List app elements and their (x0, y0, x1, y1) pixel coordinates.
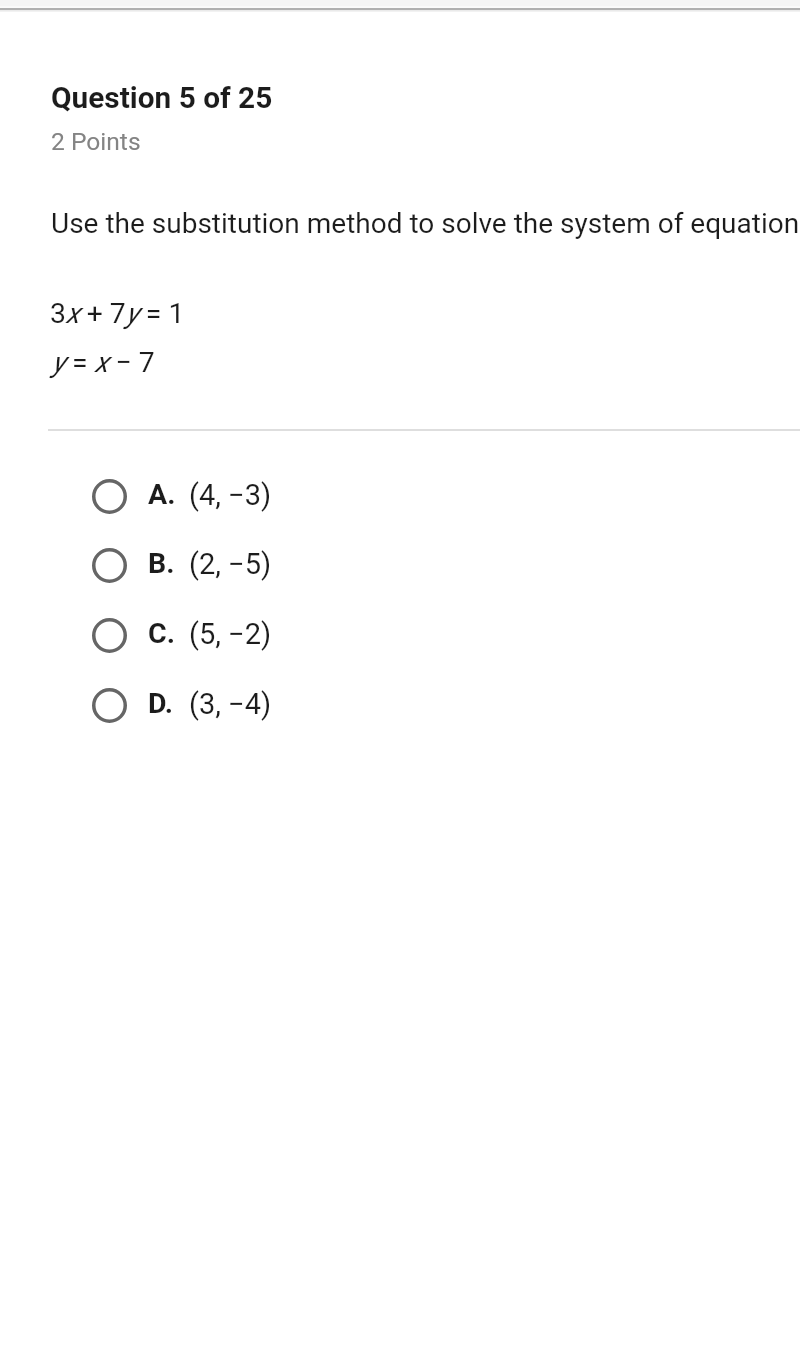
staticText: (2, −5) (189, 547, 272, 581)
staticText: (4, −3) (189, 478, 272, 512)
staticText: A. (148, 478, 176, 511)
staticText: D. (148, 687, 174, 720)
staticText: Question 5 of 25 (51, 80, 273, 115)
button[interactable]: Option A. (4, −3) (0, 461, 800, 531)
button[interactable]: Option B. (2, −5) (0, 530, 800, 600)
staticText: C. (148, 617, 175, 650)
staticText: Use the substitution method to solve the… (51, 207, 800, 240)
staticText: (3, −4) (189, 687, 272, 721)
staticText: 3x + 7y = 1 (50, 297, 185, 330)
staticText: y = x − 7 (52, 346, 155, 379)
staticText: 2 Points (51, 127, 141, 156)
staticText: B. (148, 547, 175, 580)
button[interactable]: Option D. (3, −4) (0, 670, 800, 740)
button[interactable]: Option C. (5, −2) (0, 600, 800, 670)
staticText: (5, −2) (189, 617, 272, 651)
